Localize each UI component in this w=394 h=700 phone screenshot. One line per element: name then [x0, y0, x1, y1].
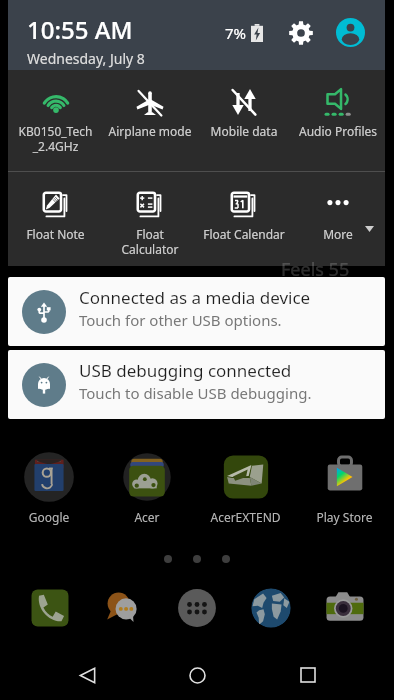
button[interactable]: Back [63, 651, 111, 699]
staticText: Touch to disable USB debugging. [79, 383, 312, 403]
button[interactable]: Connected as a media device [8, 277, 385, 346]
staticText: Mobile data [197, 123, 291, 139]
button[interactable]: User profile [336, 18, 365, 47]
button[interactable]: Acer [98, 450, 196, 525]
staticText: Float Note [8, 226, 103, 242]
staticText: Airplane mode [103, 123, 197, 139]
staticText: 10:55 AM [27, 13, 133, 46]
button[interactable]: More [291, 172, 385, 266]
button[interactable]: Play Store [295, 450, 394, 525]
staticText: Float Calendar [197, 226, 291, 242]
button[interactable]: AcerEXTEND [196, 450, 295, 525]
button[interactable]: Recents [284, 651, 332, 699]
staticText: USB debugging connected [79, 359, 292, 382]
staticText: Google [0, 509, 98, 525]
staticText: Feels 55 [281, 257, 350, 282]
staticText: AcerEXTEND [196, 509, 295, 525]
button[interactable]: Float Calendar [197, 172, 291, 242]
button[interactable]: Browser [234, 580, 308, 636]
staticText: Acer [98, 509, 196, 525]
button[interactable]: Google [0, 450, 98, 525]
button[interactable]: Audio Profiles [291, 70, 385, 139]
staticText: More [291, 226, 385, 242]
button[interactable]: Camera [308, 580, 382, 636]
staticText: Audio Profiles [291, 123, 385, 139]
button[interactable]: Float Calculator [103, 172, 197, 257]
staticText: 7% [225, 23, 247, 43]
staticText: Connected as a media device [79, 286, 311, 309]
button[interactable]: USB debugging connected [8, 350, 385, 419]
button[interactable]: Apps [160, 580, 234, 636]
button[interactable]: Phone [13, 580, 86, 636]
staticText: Float Calculator [103, 226, 197, 257]
staticText: KB0150_Tech _2.4GHz [8, 123, 103, 154]
button[interactable]: Messages [86, 580, 160, 636]
button[interactable]: KB0150_Tech _2.4GHz [8, 70, 103, 154]
staticText: Play Store [295, 509, 394, 525]
button[interactable]: Mobile data [197, 70, 291, 139]
staticText: Touch for other USB options. [79, 310, 282, 330]
button[interactable]: Float Note [8, 172, 103, 242]
button[interactable]: Home [173, 651, 221, 699]
button[interactable]: Settings [288, 20, 314, 46]
staticText: Wednesday, July 8 [27, 49, 145, 68]
button[interactable]: Airplane mode [103, 70, 197, 139]
